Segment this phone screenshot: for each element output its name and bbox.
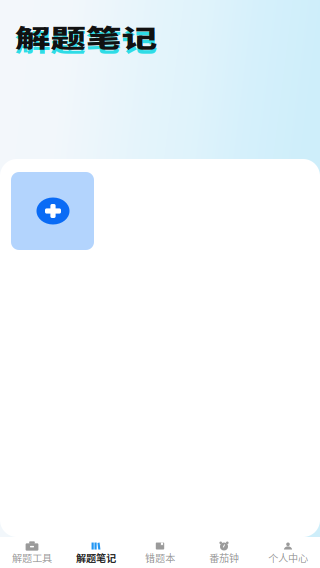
staticText: 番茄钟 <box>209 550 239 565</box>
button[interactable]: 个人中心 <box>256 537 320 568</box>
staticText: 解题工具 <box>12 550 52 565</box>
staticText: 解题笔记 <box>15 22 143 68</box>
staticText: 解题笔记 <box>76 550 116 565</box>
button[interactable]: 解题工具 <box>0 537 64 568</box>
button[interactable]: 新建笔记 <box>11 172 94 250</box>
staticText: 个人中心 <box>268 550 308 565</box>
button[interactable]: 番茄钟 <box>192 537 256 568</box>
button[interactable]: 解题笔记 <box>64 537 128 568</box>
button[interactable]: 错题本 <box>128 537 192 568</box>
staticText: 解题笔记 <box>15 18 143 64</box>
staticText: 错题本 <box>145 550 175 565</box>
